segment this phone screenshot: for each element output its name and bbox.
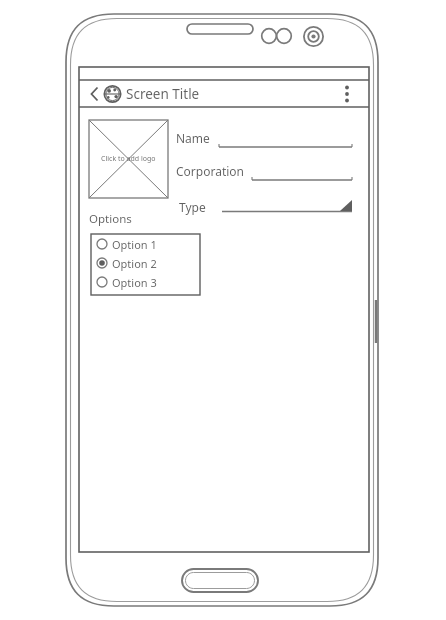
button[interactable]: Type — [176, 194, 358, 220]
button[interactable]: Option 1 — [95, 235, 197, 254]
button[interactable]: Option 3 — [95, 273, 197, 292]
button[interactable]: More options — [334, 80, 362, 106]
button[interactable]: Corporation — [176, 158, 358, 184]
button[interactable]: Name — [176, 126, 358, 152]
button[interactable]: Click to add logo — [89, 120, 168, 198]
button[interactable]: Back — [88, 80, 110, 106]
button[interactable]: Option 2 — [95, 254, 197, 273]
